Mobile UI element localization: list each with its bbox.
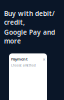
staticText: x [43, 56, 45, 62]
staticText: Payment [11, 56, 28, 62]
staticText: Google Pay and more [4, 28, 55, 45]
staticText: Choose a method [11, 64, 36, 67]
staticText: Buy with debit/credit, [4, 9, 55, 27]
button[interactable]: Close [43, 56, 45, 62]
